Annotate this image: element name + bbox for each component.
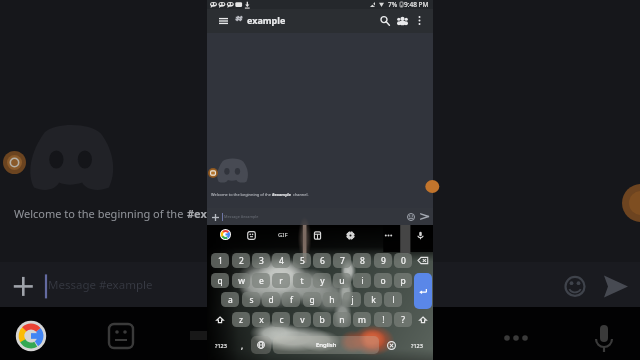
button[interactable]: 3: [252, 253, 270, 268]
button[interactable]: o: [374, 273, 392, 288]
button[interactable]: u: [333, 273, 351, 288]
button[interactable]: !: [374, 312, 392, 327]
button[interactable]: e: [252, 273, 270, 288]
button[interactable]: GIF: [275, 230, 291, 239]
button[interactable]: ?: [394, 312, 412, 327]
staticText: p: [400, 275, 406, 287]
button[interactable]: Google search: [220, 229, 231, 240]
staticText: 1: [218, 255, 223, 267]
button[interactable]: f: [282, 292, 300, 307]
button[interactable]: 1: [211, 253, 229, 268]
staticText: 6: [320, 255, 325, 267]
button[interactable]: Enter: [414, 273, 432, 309]
staticText: 9:48 PM: [404, 0, 429, 9]
button[interactable]: 6: [313, 253, 331, 268]
button[interactable]: ?123: [209, 336, 233, 354]
button[interactable]: w: [232, 273, 250, 288]
staticText: z: [239, 314, 243, 326]
button[interactable]: i: [353, 273, 371, 288]
staticText: #exa: [187, 206, 214, 221]
staticText: Welcome to the beginning of the: [211, 192, 272, 197]
button[interactable]: Members: [393, 12, 411, 30]
staticText: x: [259, 314, 264, 326]
button[interactable]: 5: [293, 253, 311, 268]
button[interactable]: y: [313, 273, 331, 288]
button[interactable]: s: [242, 292, 260, 307]
button[interactable]: Settings: [342, 227, 358, 243]
button[interactable]: b: [313, 312, 331, 327]
staticText: !: [382, 314, 385, 326]
button[interactable]: 2: [232, 253, 250, 268]
button[interactable]: Voice input: [412, 227, 428, 243]
button[interactable]: k: [364, 292, 382, 307]
button[interactable]: n: [333, 312, 351, 327]
staticText: 5: [300, 255, 305, 267]
staticText: w: [238, 275, 245, 287]
button[interactable]: Emoji: [381, 336, 401, 354]
staticText: d: [268, 294, 274, 306]
button[interactable]: Shift: [211, 312, 229, 327]
staticText: ,: [241, 340, 244, 351]
staticText: v: [300, 314, 305, 326]
staticText: GIF: [278, 231, 288, 239]
staticText: 0: [401, 255, 406, 267]
button[interactable]: t: [293, 273, 311, 288]
button[interactable]: English: [273, 336, 379, 354]
button[interactable]: c: [272, 312, 290, 327]
staticText: English: [316, 341, 337, 349]
staticText: ?123: [411, 342, 423, 349]
button[interactable]: 8: [353, 253, 371, 268]
button[interactable]: h: [323, 292, 341, 307]
button[interactable]: m: [353, 312, 371, 327]
button[interactable]: Comma: [235, 336, 249, 354]
button[interactable]: Add attachment: [207, 209, 223, 225]
staticText: s: [249, 294, 254, 306]
button[interactable]: Open navigation drawer: [214, 12, 232, 30]
button[interactable]: ?123: [405, 336, 429, 354]
staticText: example: [247, 14, 286, 26]
staticText: e: [259, 275, 264, 287]
button[interactable]: Backspace: [414, 253, 432, 268]
staticText: ?: [401, 314, 405, 326]
button[interactable]: 9: [374, 253, 392, 268]
staticText: o: [380, 275, 386, 287]
staticText: b: [319, 314, 325, 326]
staticText: 4: [279, 255, 284, 267]
button[interactable]: Clipboard: [309, 227, 325, 243]
button[interactable]: l: [384, 292, 402, 307]
button[interactable]: 7: [333, 253, 351, 268]
button[interactable]: Stickers: [243, 227, 259, 243]
button[interactable]: p: [394, 273, 412, 288]
staticText: 2: [239, 255, 244, 267]
button[interactable]: More options: [411, 12, 427, 28]
staticText: Welcome to the beginning of the: [14, 206, 187, 221]
button[interactable]: x: [252, 312, 270, 327]
button[interactable]: a: [221, 292, 239, 307]
staticText: m: [358, 314, 366, 326]
staticText: q: [217, 275, 223, 287]
button[interactable]: g: [303, 292, 321, 307]
staticText: y: [320, 275, 325, 287]
button[interactable]: Send: [417, 209, 432, 224]
button[interactable]: 4: [272, 253, 290, 268]
staticText: i: [361, 275, 364, 287]
staticText: a: [228, 294, 233, 306]
staticText: #example: [272, 192, 292, 197]
button[interactable]: Emoji: [403, 209, 419, 225]
button[interactable]: z: [232, 312, 250, 327]
staticText: c: [279, 314, 284, 326]
button[interactable]: j: [343, 292, 361, 307]
staticText: f: [290, 294, 293, 306]
button[interactable]: r: [272, 273, 290, 288]
staticText: 7%: [388, 0, 398, 9]
button[interactable]: Search: [376, 12, 394, 30]
button[interactable]: d: [262, 292, 280, 307]
staticText: 9: [381, 255, 386, 267]
button[interactable]: v: [293, 312, 311, 327]
button[interactable]: More: [380, 227, 396, 243]
button[interactable]: Switch language: [251, 336, 271, 354]
button[interactable]: q: [211, 273, 229, 288]
button[interactable]: 0: [394, 253, 412, 268]
button[interactable]: Shift: [414, 312, 432, 327]
staticText: h: [329, 294, 335, 306]
